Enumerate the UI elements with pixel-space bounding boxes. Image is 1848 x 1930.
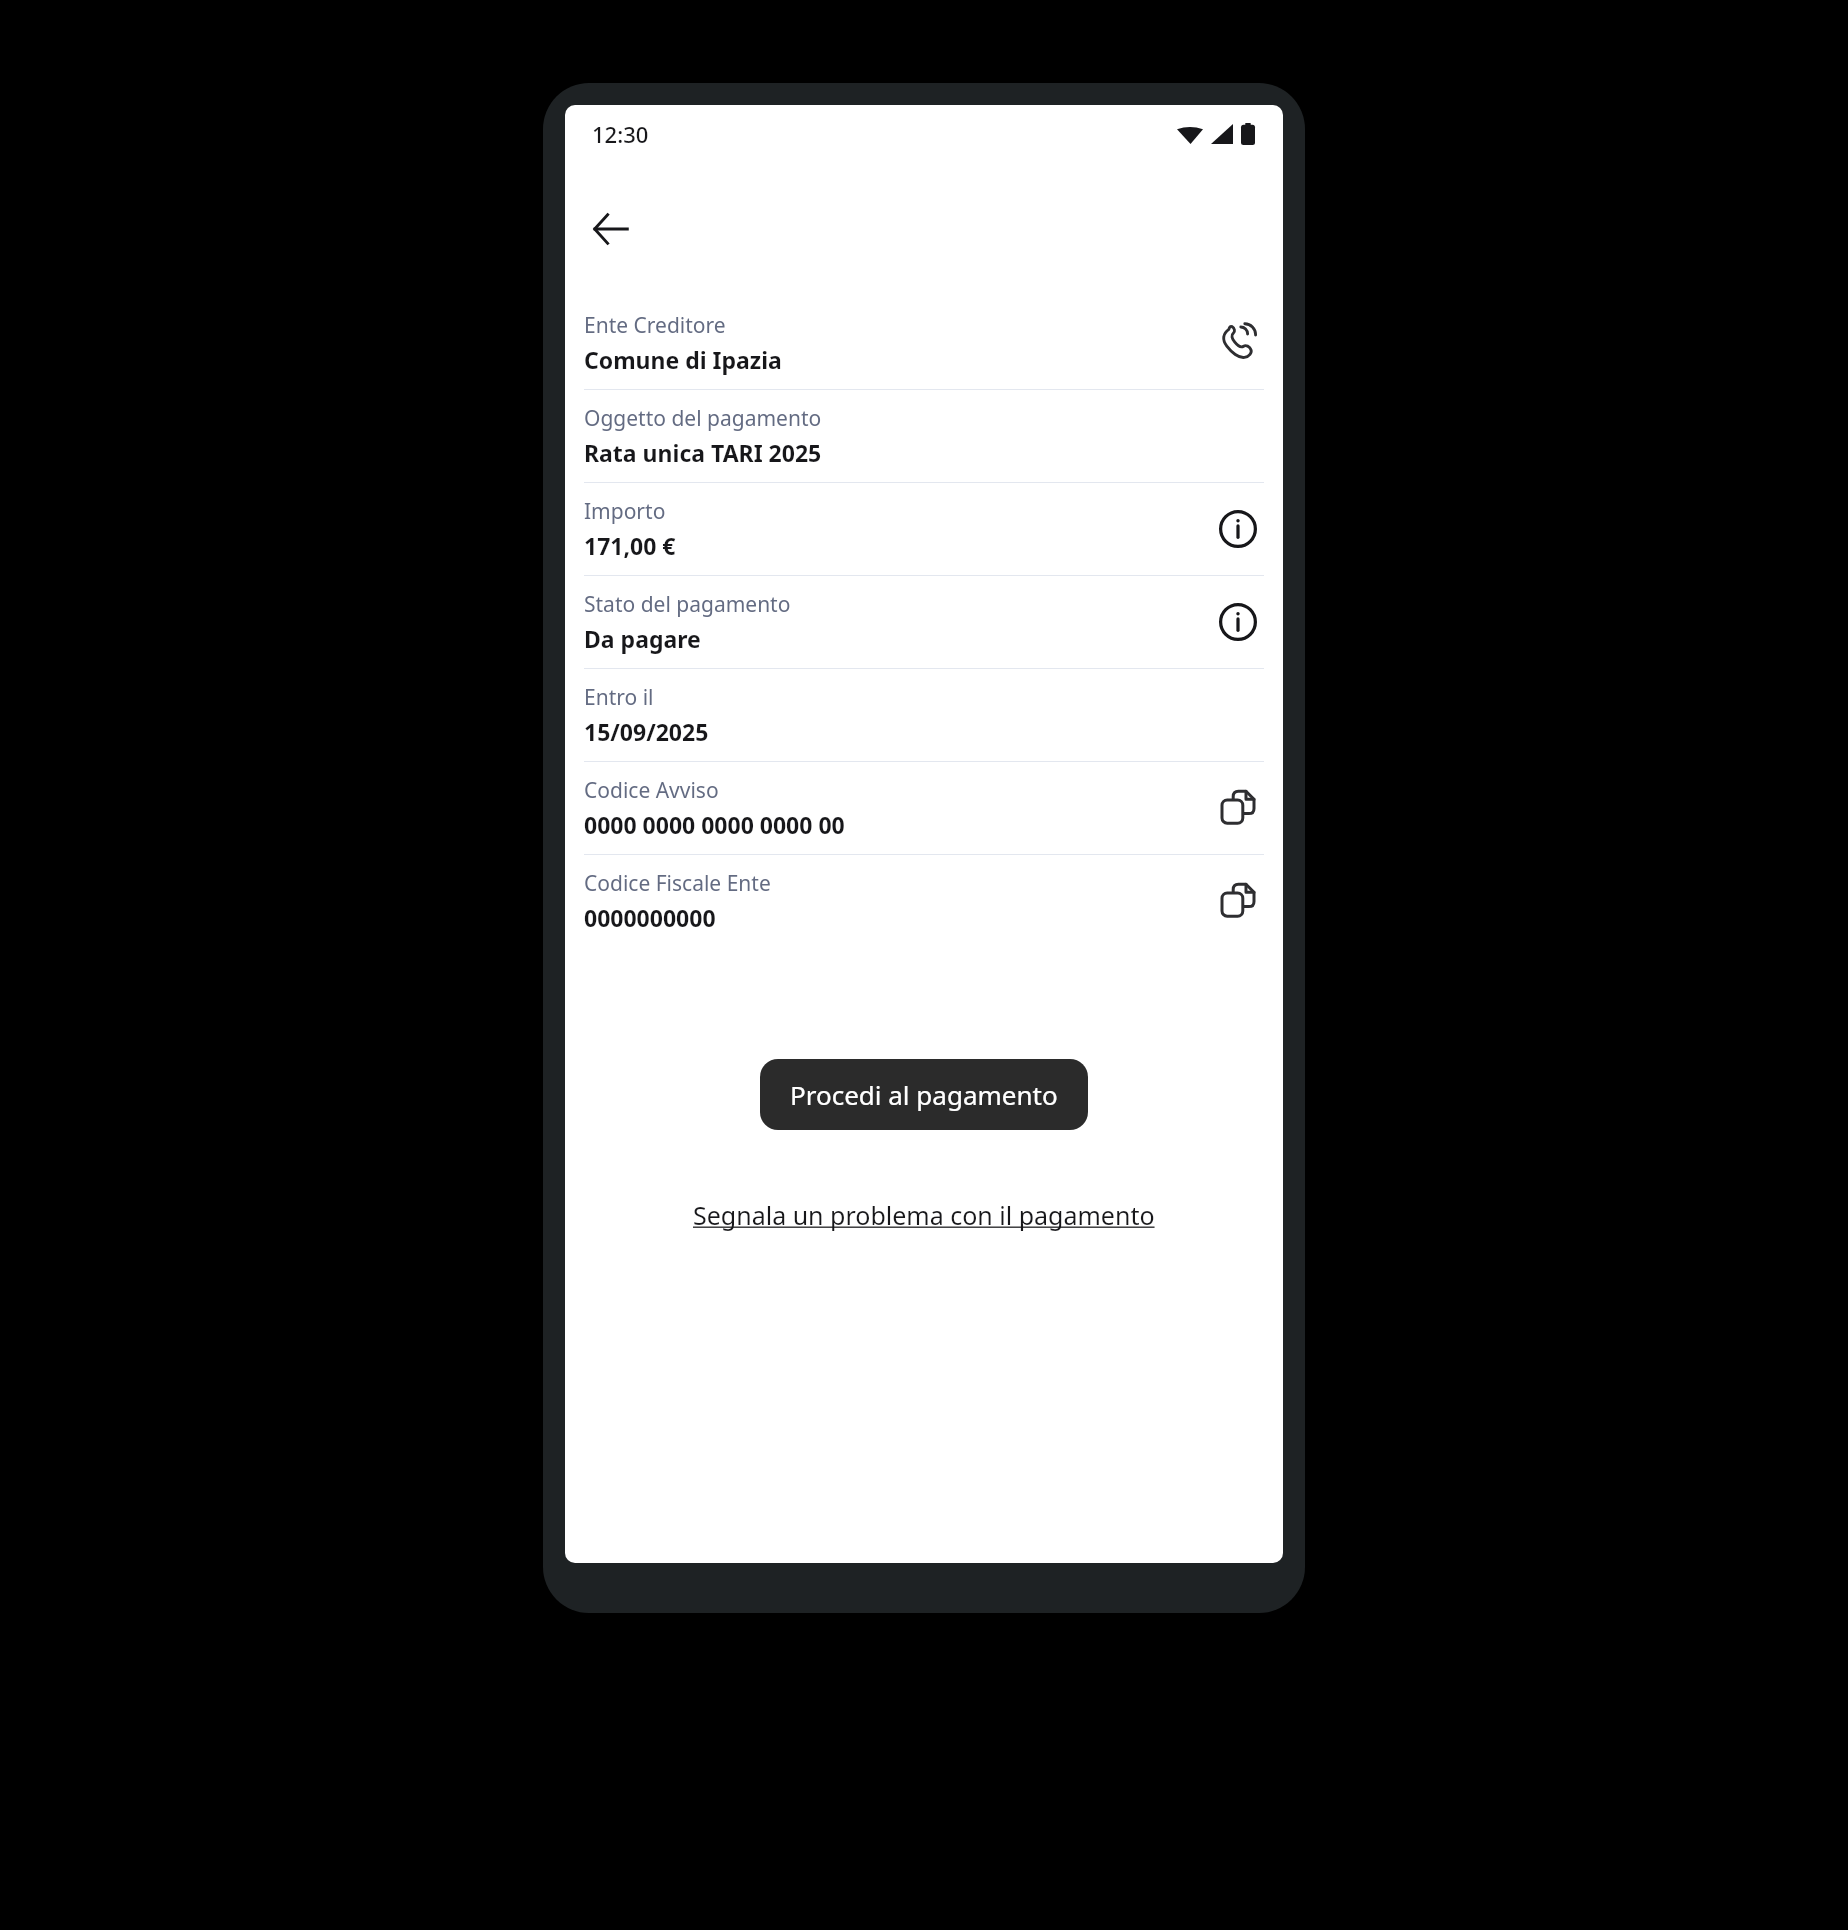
button[interactable]: Ente Creditore — [584, 297, 1264, 389]
staticText: 12:30 — [592, 119, 649, 149]
staticText: Oggetto del pagamento — [584, 404, 822, 433]
staticText: Entro il — [584, 683, 654, 712]
staticText: Codice Fiscale Ente — [584, 869, 771, 898]
button[interactable]: Importo — [584, 483, 1264, 575]
button[interactable]: Copia — [1212, 782, 1264, 834]
button[interactable]: Codice Avviso — [584, 762, 1264, 854]
staticText: Stato del pagamento — [584, 590, 791, 619]
button[interactable]: Indietro — [583, 201, 639, 257]
staticText: Importo — [584, 497, 666, 526]
staticText: Comune di Ipazia — [584, 344, 782, 375]
button[interactable]: Informazioni — [1212, 596, 1264, 648]
staticText: 171,00 € — [584, 530, 676, 561]
button[interactable]: Procedi al pagamento — [760, 1059, 1088, 1130]
staticText: 0000 0000 0000 0000 00 — [584, 809, 845, 840]
button[interactable]: Stato del pagamento — [584, 576, 1264, 668]
button[interactable]: Copia — [1212, 875, 1264, 927]
staticText: Rata unica TARI 2025 — [584, 437, 822, 468]
button[interactable]: Chiama l'ente — [1212, 317, 1264, 369]
button[interactable]: Informazioni — [1212, 503, 1264, 555]
button[interactable]: Codice Fiscale Ente — [584, 855, 1264, 947]
staticText: 0000000000 — [584, 902, 716, 933]
staticText: Ente Creditore — [584, 311, 726, 340]
staticText: Da pagare — [584, 623, 701, 654]
staticText: Segnala un problema con il pagamento — [693, 1198, 1155, 1232]
staticText: Codice Avviso — [584, 776, 719, 805]
staticText: 15/09/2025 — [584, 716, 709, 747]
button[interactable]: Segnala un problema con il pagamento — [687, 1192, 1161, 1238]
staticText: Procedi al pagamento — [790, 1077, 1058, 1112]
